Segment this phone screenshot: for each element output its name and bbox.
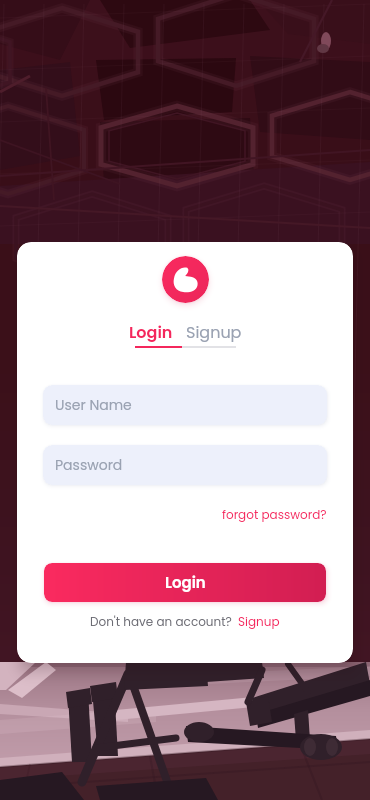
button[interactable]: Password xyxy=(43,445,327,485)
staticText: Signup xyxy=(238,613,280,630)
staticText: Login xyxy=(129,321,173,343)
button[interactable]: Signup xyxy=(186,321,242,343)
button[interactable]: User Name xyxy=(43,385,327,425)
button[interactable]: Signup xyxy=(238,613,280,630)
button[interactable]: forgot password? xyxy=(222,506,327,523)
button[interactable]: Login xyxy=(44,563,326,602)
staticText: User Name xyxy=(55,395,132,415)
staticText: Signup xyxy=(186,321,242,343)
staticText: Login xyxy=(165,572,206,593)
button[interactable]: Login xyxy=(129,321,173,343)
staticText: forgot password? xyxy=(222,506,327,523)
staticText: Password xyxy=(55,455,123,475)
staticText: Don't have an account? xyxy=(90,613,232,630)
button[interactable]: App logo xyxy=(162,256,209,303)
